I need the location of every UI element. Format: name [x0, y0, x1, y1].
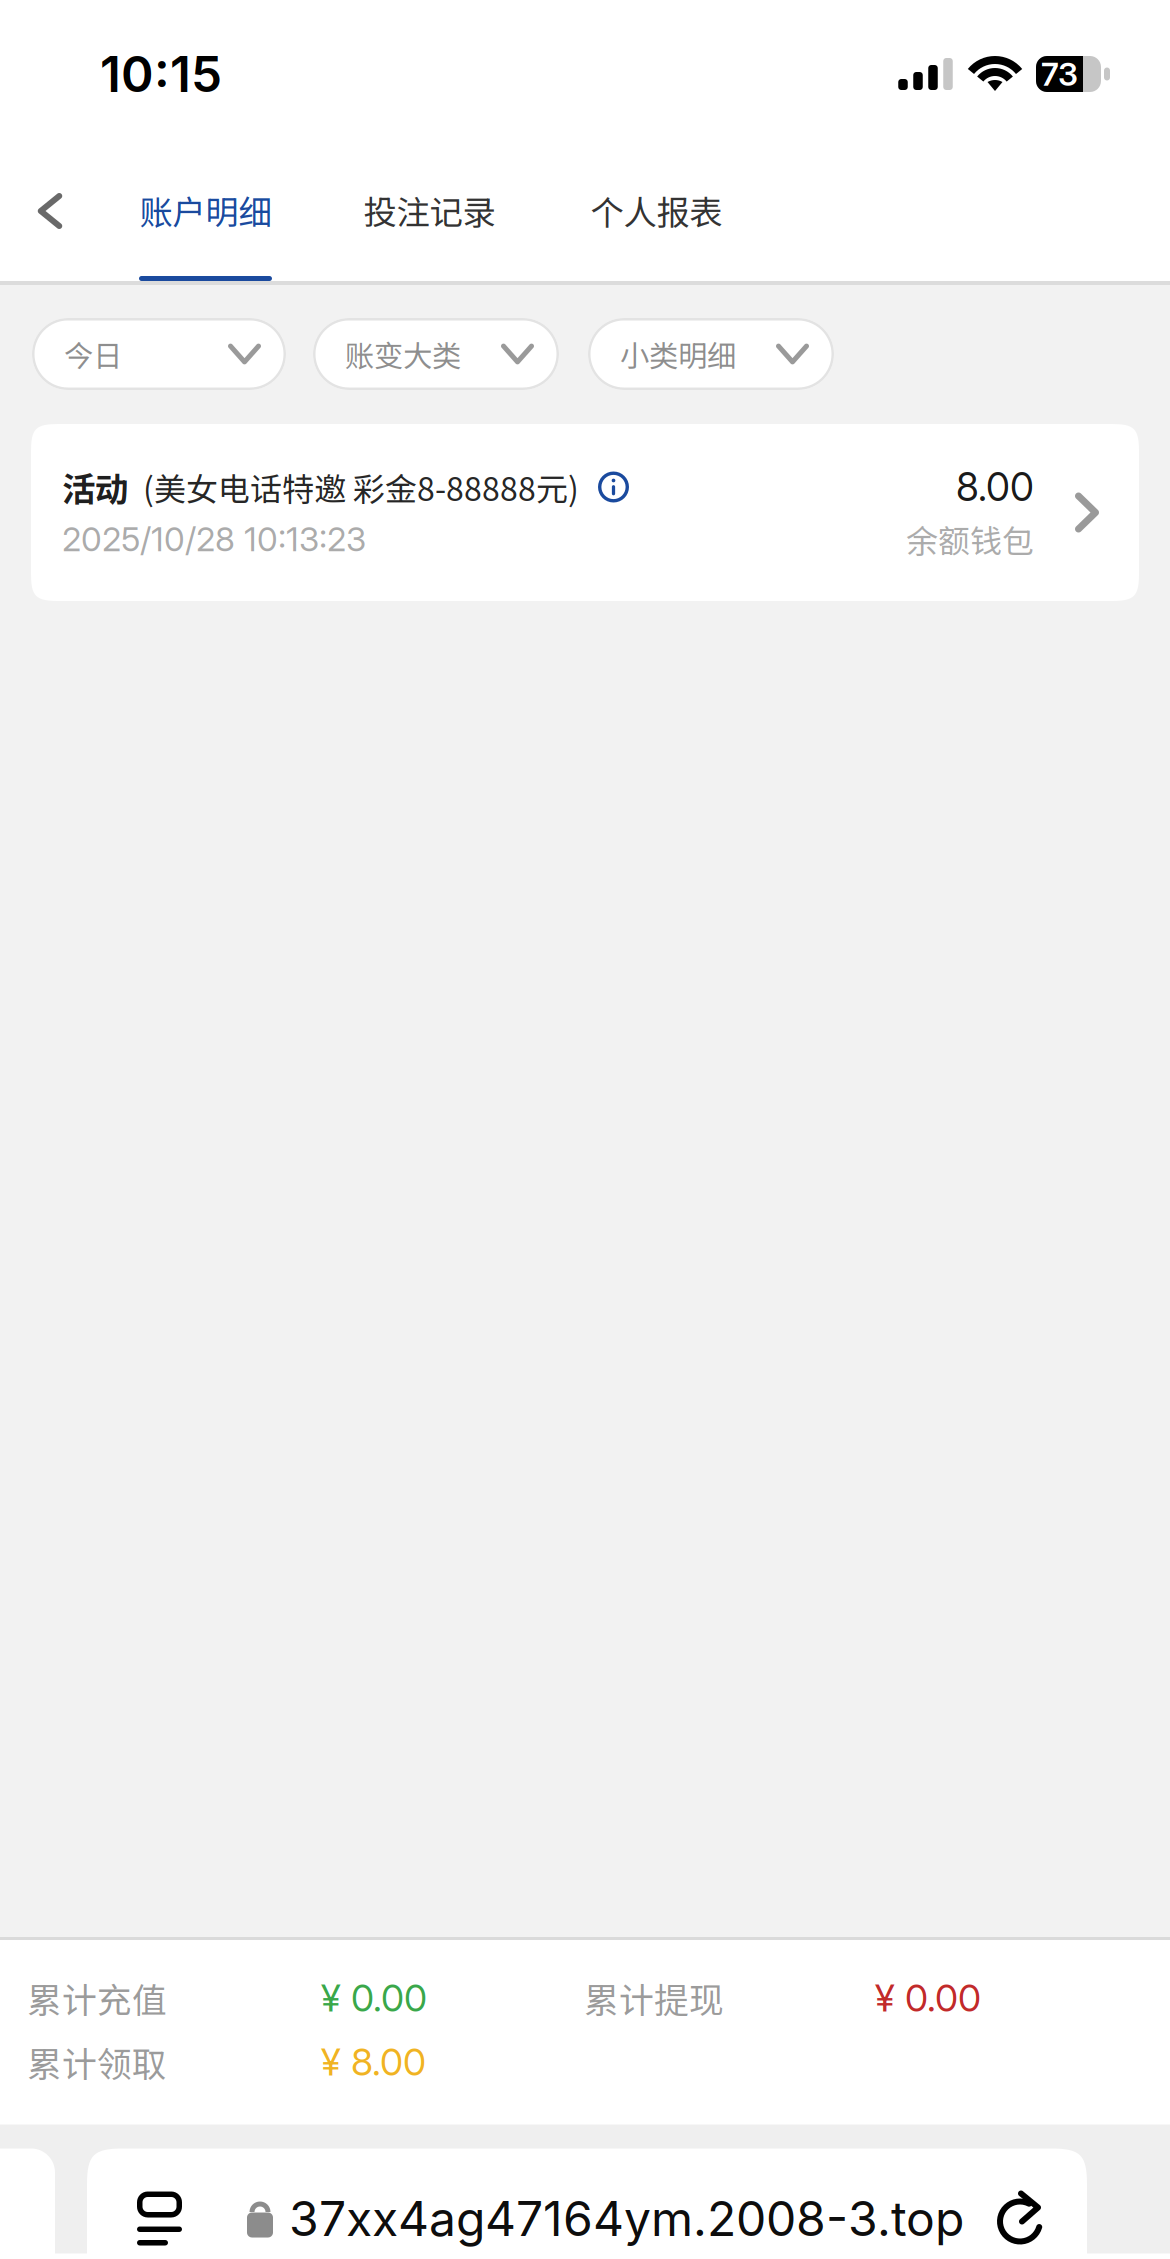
staticText: 小类明细: [620, 333, 736, 375]
button[interactable]: 小类明细: [588, 318, 834, 390]
staticText: 累计提现: [584, 1973, 724, 2023]
staticText: 投注记录: [363, 186, 495, 234]
staticText: 今日: [64, 333, 122, 375]
staticText: 累计充值: [27, 1973, 167, 2023]
button[interactable]: Back: [0, 122, 100, 281]
button[interactable]: 投注记录: [363, 122, 496, 281]
staticText: (美女电话特邀 彩金8-88888元): [143, 464, 579, 510]
button[interactable]: 账户明细: [139, 122, 272, 281]
staticText: ¥ 0.00: [875, 1975, 981, 2021]
staticText: ¥ 8.00: [321, 2039, 426, 2085]
button[interactable]: 37xx4ag47164ym.2008-3.top: [87, 2148, 1087, 2259]
staticText: ¥ 0.00: [321, 1975, 427, 2021]
staticText: 10:15: [100, 44, 222, 104]
staticText: 37xx4ag47164ym.2008-3.top: [289, 2189, 964, 2248]
staticText: 账变大类: [345, 333, 461, 375]
staticText: 余额钱包: [906, 516, 1034, 562]
button[interactable]: 个人报表: [590, 122, 723, 281]
staticText: 累计领取: [27, 2037, 167, 2087]
staticText: 73: [1041, 55, 1078, 93]
staticText: 2025/10/28 10:13:23: [62, 519, 366, 559]
staticText: 活动: [62, 463, 128, 511]
button[interactable]: 今日: [32, 318, 286, 390]
staticText: 个人报表: [590, 186, 722, 234]
button[interactable]: 账变大类: [313, 318, 559, 390]
button[interactable]: 活动: [31, 424, 1139, 601]
staticText: 8.00: [956, 464, 1034, 510]
staticText: 账户明细: [139, 186, 271, 234]
